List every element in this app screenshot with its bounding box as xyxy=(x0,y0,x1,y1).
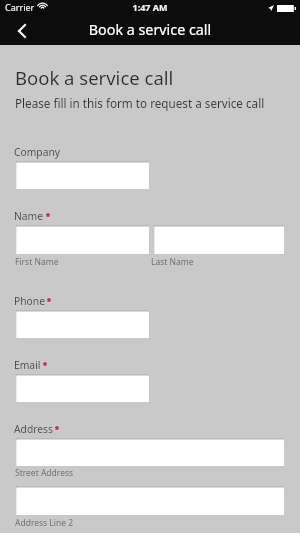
button[interactable]: First Name xyxy=(16,225,149,254)
button[interactable]: Last Name xyxy=(154,225,284,254)
staticText: Carrier xyxy=(5,1,35,13)
staticText: First Name xyxy=(15,256,59,268)
button[interactable]: Address Line 2 xyxy=(16,486,284,515)
staticText: Address Line 2 xyxy=(15,517,74,529)
staticText: Street Address xyxy=(15,467,74,479)
staticText: Address xyxy=(14,422,53,436)
staticText: Name xyxy=(14,209,44,223)
button[interactable]: Street Address xyxy=(16,438,284,466)
button[interactable]: Back xyxy=(0,18,44,43)
button[interactable]: Email xyxy=(16,374,149,402)
staticText: Book a service call xyxy=(0,20,300,39)
staticText: Email xyxy=(14,358,41,372)
staticText: Phone xyxy=(14,294,45,308)
staticText: Book a service call xyxy=(15,65,174,90)
staticText: 1:47 AM xyxy=(0,1,300,13)
button[interactable]: Company xyxy=(16,161,149,189)
button[interactable]: Phone xyxy=(16,310,149,338)
staticText: Please fill in this form to request a se… xyxy=(15,95,265,111)
staticText: Company xyxy=(14,145,61,159)
staticText: Last Name xyxy=(151,256,194,268)
